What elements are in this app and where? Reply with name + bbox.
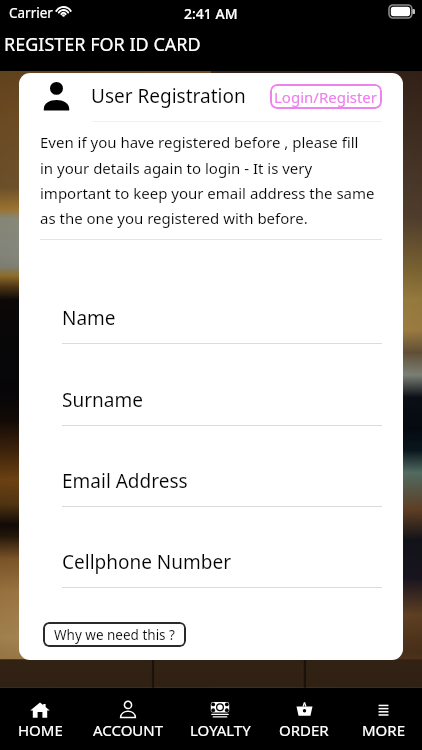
other: More (376, 703, 391, 717)
staticText: Login/Register (274, 87, 378, 107)
staticText: LOYALTY (190, 720, 251, 740)
staticText: ACCOUNT (93, 720, 164, 740)
staticText: Email Address (62, 468, 188, 494)
staticText: HOME (18, 720, 63, 740)
other: Loyalty (210, 702, 230, 718)
staticText: Surname (62, 387, 143, 413)
staticText: Name (62, 305, 116, 331)
staticText: Cellphone Number (62, 549, 232, 575)
staticText: Why we need this ? (54, 626, 175, 644)
staticText: Even if you have registered before , ple… (40, 132, 375, 228)
staticText: MORE (362, 720, 405, 740)
other: Account (119, 700, 137, 719)
button[interactable]: Account (86, 688, 170, 750)
staticText: 2:41 AM (184, 4, 238, 23)
other: Home (30, 700, 50, 720)
button[interactable]: Login/Register (270, 84, 382, 109)
button[interactable]: Order (262, 688, 346, 750)
button[interactable]: Loyalty (178, 688, 262, 750)
staticText: Carrier (9, 4, 53, 22)
staticText: REGISTER FOR ID CARD (4, 32, 201, 57)
button[interactable]: Home (0, 688, 82, 750)
staticText: User Registration (91, 83, 246, 109)
other: Order (296, 702, 313, 717)
staticText: ORDER (279, 720, 329, 740)
button[interactable]: More (341, 688, 422, 750)
button[interactable]: Why we need this ? (43, 622, 186, 647)
